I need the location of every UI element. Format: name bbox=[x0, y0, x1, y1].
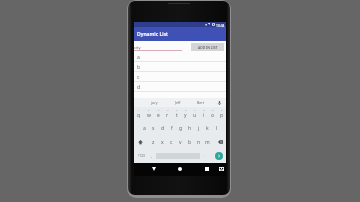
button[interactable]: l bbox=[212, 121, 221, 135]
button[interactable]: g bbox=[176, 121, 185, 135]
button[interactable]: h bbox=[185, 121, 194, 135]
button[interactable]: 5 bbox=[172, 107, 181, 121]
staticText: s bbox=[152, 125, 155, 132]
staticText: m bbox=[205, 139, 210, 146]
staticText: y bbox=[184, 112, 187, 119]
staticText: 2 bbox=[148, 108, 150, 111]
button[interactable]: Shift bbox=[134, 135, 148, 149]
button[interactable]: m bbox=[203, 135, 212, 149]
button[interactable]: d bbox=[158, 121, 167, 135]
staticText: d bbox=[137, 84, 141, 91]
staticText: 0 bbox=[221, 108, 223, 111]
button[interactable]: s bbox=[149, 121, 158, 135]
staticText: g bbox=[179, 125, 183, 132]
staticText: h bbox=[188, 125, 192, 132]
button[interactable]: b bbox=[185, 135, 194, 149]
staticText: 4 bbox=[167, 108, 169, 111]
button[interactable]: 4 bbox=[163, 107, 172, 121]
button[interactable]: 1 bbox=[134, 107, 144, 121]
button[interactable]: b bbox=[134, 62, 226, 72]
button[interactable]: 6 bbox=[181, 107, 190, 121]
staticText: r bbox=[166, 112, 169, 119]
button[interactable]: Voice input bbox=[212, 98, 226, 107]
staticText: 5 bbox=[176, 108, 178, 111]
button[interactable]: v bbox=[176, 135, 185, 149]
button[interactable]: Backspace bbox=[212, 135, 226, 149]
staticText: a bbox=[137, 54, 140, 61]
button[interactable]: n bbox=[194, 135, 203, 149]
button[interactable]: a bbox=[134, 52, 226, 62]
staticText: Jeff bbox=[175, 100, 181, 105]
button[interactable]: c bbox=[134, 72, 226, 82]
staticText: 1 bbox=[138, 108, 140, 111]
staticText: 3 bbox=[158, 108, 160, 111]
button[interactable]: d bbox=[134, 82, 226, 92]
button[interactable]: k bbox=[203, 121, 212, 135]
staticText: b bbox=[137, 64, 141, 71]
staticText: k bbox=[206, 125, 209, 132]
staticText: . bbox=[203, 153, 205, 158]
staticText: q bbox=[137, 112, 141, 119]
button[interactable]: f bbox=[167, 121, 176, 135]
staticText: ADD IN LIST bbox=[198, 45, 218, 50]
staticText: a bbox=[143, 125, 146, 132]
button[interactable]: 3 bbox=[154, 107, 163, 121]
button[interactable]: 8 bbox=[199, 107, 208, 121]
button[interactable]: c bbox=[167, 135, 176, 149]
button[interactable]: 9 bbox=[208, 107, 217, 121]
staticText: w bbox=[147, 112, 151, 119]
staticText: 10:34 bbox=[216, 23, 225, 27]
staticText: u bbox=[193, 112, 197, 119]
staticText: 7 bbox=[194, 108, 196, 111]
button[interactable]: jury bbox=[142, 98, 166, 107]
staticText: 9 bbox=[212, 108, 214, 111]
staticText: Bert bbox=[197, 100, 205, 105]
staticText: 8 bbox=[203, 108, 205, 111]
staticText: d bbox=[161, 125, 165, 132]
staticText: c bbox=[170, 139, 173, 146]
staticText: city bbox=[134, 45, 141, 51]
button[interactable]: ?123 bbox=[134, 149, 148, 163]
staticText: t bbox=[176, 112, 178, 119]
button[interactable]: Enter bbox=[215, 152, 223, 160]
staticText: o bbox=[211, 112, 215, 119]
button[interactable]: Switch keyboard bbox=[216, 164, 226, 173]
button[interactable]: 2 bbox=[144, 107, 154, 121]
button[interactable]: Home bbox=[175, 164, 185, 173]
button[interactable]: 7 bbox=[190, 107, 199, 121]
button[interactable]: Jeff bbox=[166, 98, 189, 107]
button[interactable]: a bbox=[139, 121, 149, 135]
staticText: j bbox=[198, 125, 200, 132]
staticText: f bbox=[171, 125, 173, 132]
staticText: Dynamic List bbox=[137, 31, 169, 38]
staticText: v bbox=[179, 139, 182, 146]
staticText: ?123 bbox=[138, 154, 145, 158]
staticText: 6 bbox=[185, 108, 187, 111]
staticText: z bbox=[152, 139, 155, 146]
staticText: l bbox=[216, 125, 218, 132]
staticText: b bbox=[188, 139, 192, 146]
staticText: n bbox=[197, 139, 201, 146]
staticText: i bbox=[203, 112, 205, 119]
button[interactable]: j bbox=[194, 121, 203, 135]
staticText: c bbox=[137, 74, 140, 81]
button[interactable]: x bbox=[158, 135, 167, 149]
button[interactable]: , bbox=[148, 149, 156, 163]
button[interactable]: 0 bbox=[217, 107, 226, 121]
staticText: jury bbox=[151, 100, 158, 105]
staticText: x bbox=[161, 139, 164, 146]
button[interactable]: Recent apps bbox=[202, 164, 212, 173]
button[interactable]: z bbox=[148, 135, 158, 149]
button[interactable]: Back bbox=[149, 164, 159, 173]
button[interactable]: ADD IN LIST bbox=[191, 43, 224, 51]
button[interactable]: Bert bbox=[189, 98, 212, 107]
staticText: , bbox=[151, 153, 153, 158]
staticText: p bbox=[220, 112, 224, 119]
staticText: e bbox=[157, 112, 160, 119]
